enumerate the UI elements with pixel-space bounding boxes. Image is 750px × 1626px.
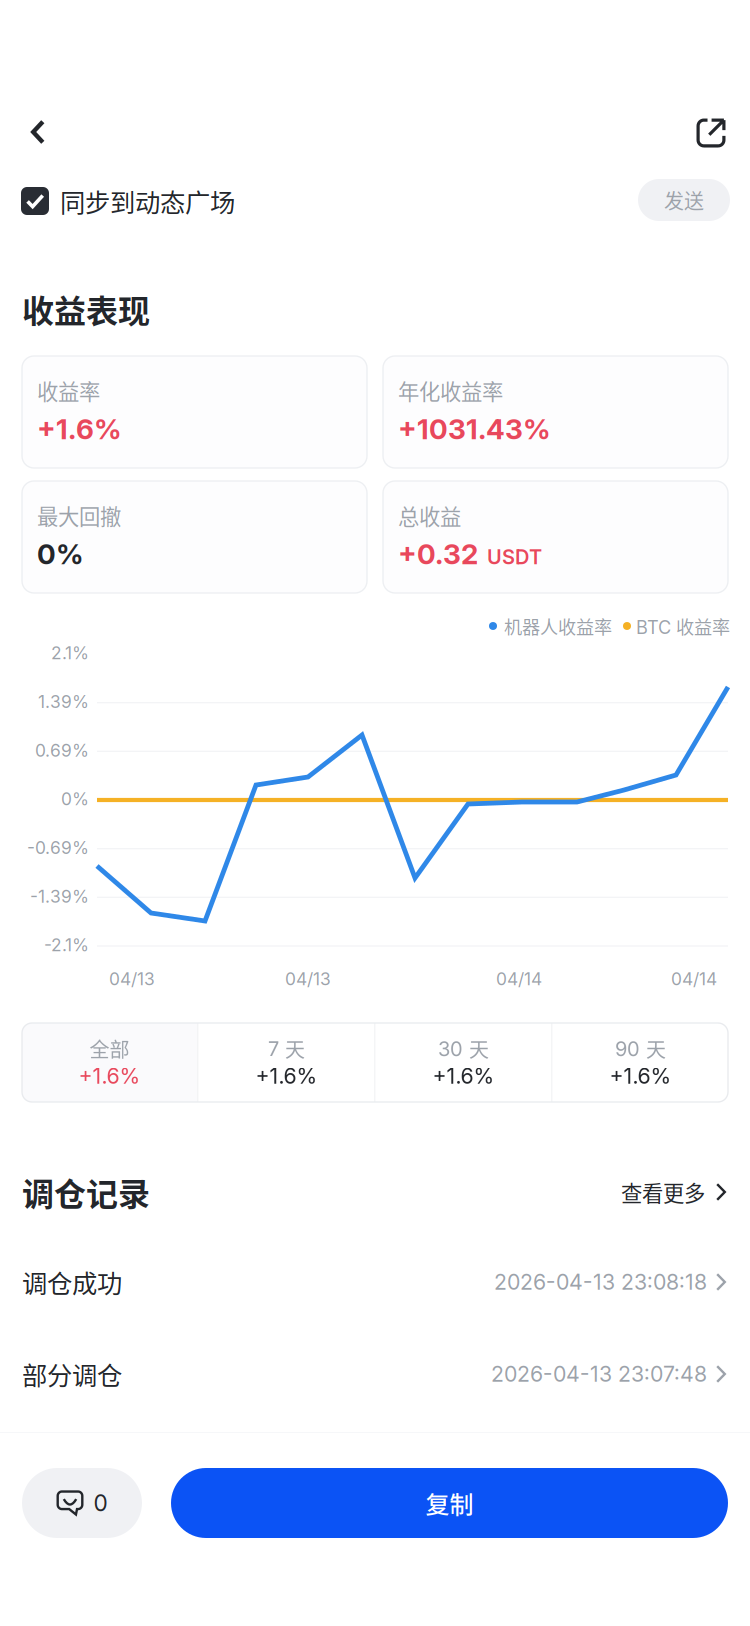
staticText: 收益表现 — [22, 286, 150, 332]
staticText: -1.39% — [30, 886, 89, 907]
staticText: 1.39% — [38, 691, 89, 712]
staticText: -2.1% — [44, 934, 89, 955]
staticText: 90 天 — [615, 1034, 666, 1063]
staticText: 04/14 — [496, 968, 542, 989]
staticText: 0.69% — [35, 740, 89, 761]
button[interactable]: 90 天 — [552, 1023, 728, 1102]
staticText: 同步到动态广场 — [60, 183, 235, 219]
staticText: 机器人收益率 — [504, 613, 612, 639]
staticText: 查看更多 — [621, 1177, 705, 1207]
staticText: 0% — [37, 537, 84, 571]
button[interactable]: 调仓成功 — [0, 1236, 750, 1328]
staticText: +1.6% — [78, 1063, 140, 1089]
staticText: 7 天 — [268, 1034, 305, 1063]
staticText: 最大回撤 — [37, 500, 121, 531]
staticText: 0% — [61, 788, 89, 809]
staticText: 2.1% — [51, 642, 89, 663]
button[interactable]: 30 天 — [375, 1023, 551, 1102]
staticText: +1.6% — [432, 1063, 494, 1089]
button[interactable]: 复制 — [171, 1468, 728, 1538]
staticText: 04/13 — [285, 968, 331, 989]
staticText: +1031.43% — [398, 412, 551, 446]
staticText: 30 天 — [438, 1034, 489, 1063]
button[interactable]: 全部 — [21, 1023, 197, 1102]
staticText: 部分调仓 — [22, 1356, 122, 1392]
staticText: 调仓成功 — [22, 1264, 122, 1300]
staticText: 04/14 — [671, 968, 717, 989]
button[interactable]: 7 天 — [198, 1023, 374, 1102]
staticText: 发送 — [664, 185, 704, 214]
button[interactable]: 同步到动态广场 — [21, 177, 235, 225]
staticText: +1.6% — [37, 412, 122, 446]
staticText: -0.69% — [27, 837, 89, 858]
staticText: 年化收益率 — [398, 375, 503, 406]
button[interactable]: 发送 — [638, 179, 730, 221]
button[interactable]: Back — [9, 103, 67, 161]
staticText: 2026-04-13 23:08:18 — [494, 1269, 707, 1295]
staticText: +0.32 — [398, 537, 478, 571]
staticText: 复制 — [425, 1486, 473, 1520]
staticText: 04/13 — [109, 968, 155, 989]
staticText: 总收益 — [398, 500, 461, 531]
staticText: 2026-04-13 23:07:48 — [491, 1361, 707, 1387]
button[interactable]: Share — [682, 104, 740, 162]
staticText: 0 — [93, 1489, 107, 1517]
staticText: 全部 — [89, 1034, 129, 1063]
button[interactable]: 0 — [22, 1468, 142, 1538]
staticText: 调仓记录 — [22, 1169, 150, 1215]
button[interactable]: 部分调仓 — [0, 1328, 750, 1420]
staticText: 收益率 — [37, 375, 100, 406]
staticText: USDT — [487, 545, 542, 569]
staticText: BTC 收益率 — [636, 613, 730, 639]
staticText: +1.6% — [609, 1063, 671, 1089]
staticText: +1.6% — [255, 1063, 317, 1089]
button[interactable]: 查看更多 — [621, 1170, 726, 1214]
